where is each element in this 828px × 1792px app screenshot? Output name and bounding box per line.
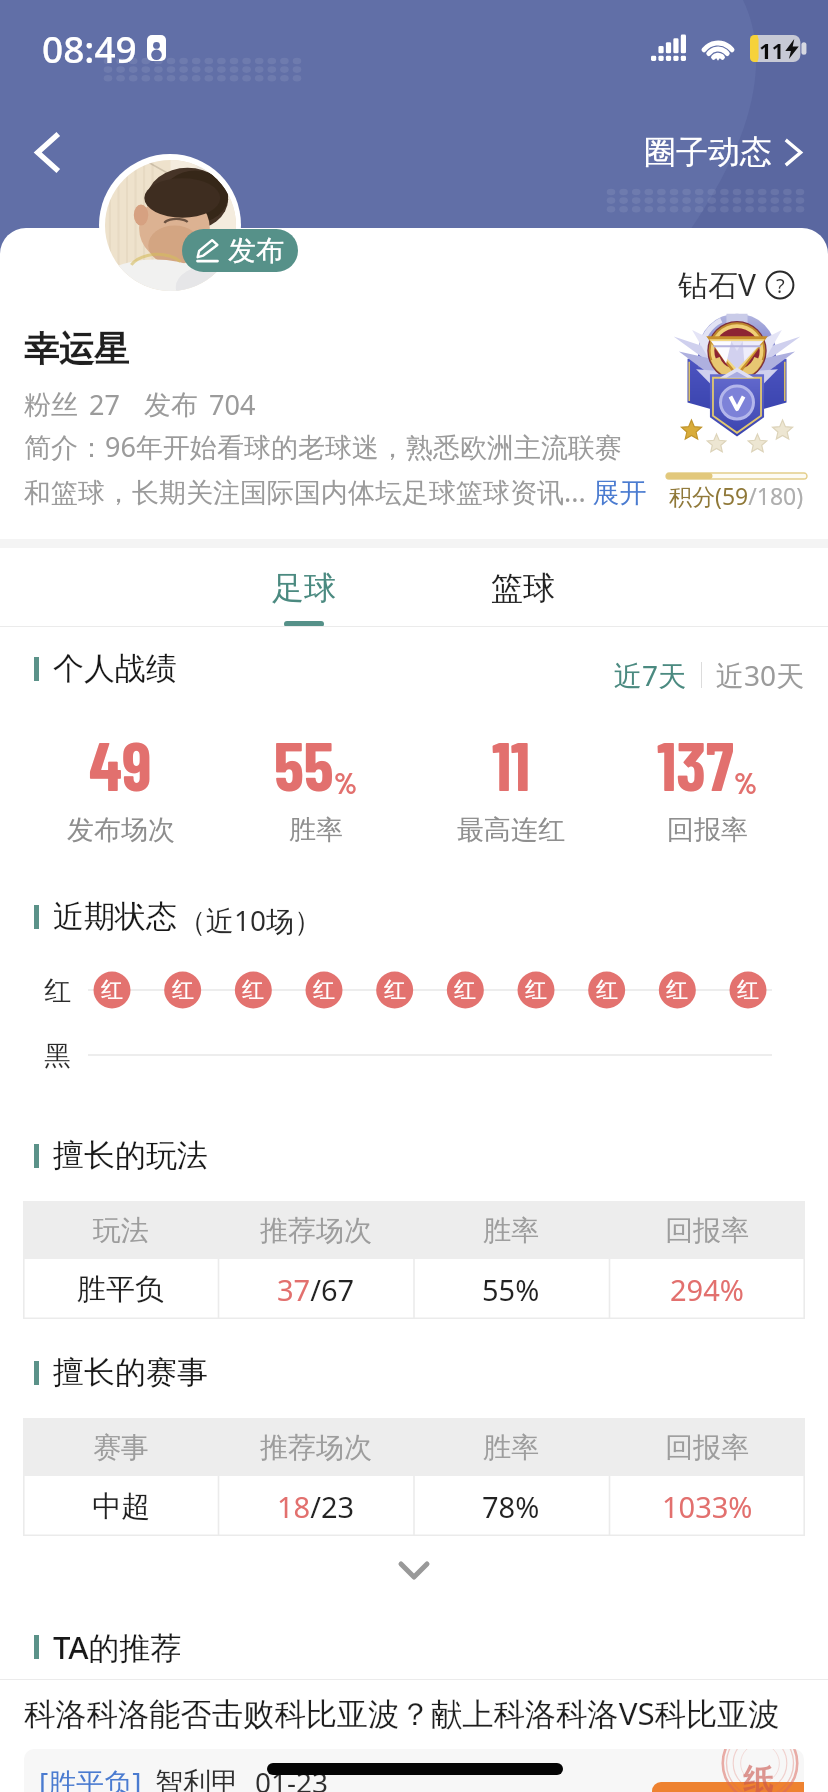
staticText: 胜平负 [77, 1271, 164, 1308]
staticText: 红 [44, 974, 71, 1008]
staticText: 78% [482, 1487, 540, 1526]
staticText: 红 [596, 976, 618, 1004]
staticText: 红 [454, 976, 476, 1004]
staticText: 圈子动态 [644, 132, 772, 172]
button[interactable]: Profile photo [99, 154, 241, 296]
button[interactable]: [胜平负] [24, 1749, 804, 1792]
staticText: 294% [670, 1270, 744, 1309]
staticText: 11 [492, 723, 531, 805]
button[interactable]: 胜平负 [23, 1259, 218, 1319]
button[interactable]: Win [377, 972, 413, 1008]
staticText: 发布场次 [67, 813, 175, 847]
button[interactable]: Win [518, 972, 554, 1008]
staticText: % [334, 764, 357, 800]
staticText: 回报率 [665, 1430, 749, 1465]
staticText: 擅长的赛事 [53, 1353, 208, 1392]
button[interactable]: Win [235, 972, 271, 1008]
staticText: 红 [384, 976, 406, 1004]
staticText: 回报率 [665, 1213, 749, 1248]
staticText: 发布 [144, 388, 198, 422]
button[interactable]: 78% [413, 1476, 609, 1536]
staticText: 红 [313, 976, 335, 1004]
staticText: 回报率 [667, 813, 748, 847]
staticText: 简介：96年开始看球的老球迷，熟悉欧洲主流联赛和篮球，长期关注国际国内体坛足球篮… [24, 428, 648, 510]
staticText: 玩法 [93, 1213, 149, 1248]
staticText: [胜平负] [39, 1763, 142, 1792]
staticText: 49 [89, 723, 152, 805]
staticText: 钻石V [678, 264, 756, 305]
staticText: 红 [525, 976, 547, 1004]
staticText: 胜率 [289, 813, 343, 847]
button[interactable]: Win [306, 972, 342, 1008]
staticText: 37/67 [277, 1270, 355, 1309]
staticText: 近7天 [614, 656, 687, 694]
button[interactable]: 近30天 [710, 652, 811, 698]
staticText: 推荐场次 [260, 1430, 372, 1465]
staticText: ? [776, 272, 785, 299]
staticText: 幸运星 [24, 327, 129, 371]
button[interactable]: 发布 [182, 229, 298, 272]
staticText: 27 [89, 386, 120, 423]
button[interactable]: 1033% [609, 1476, 805, 1536]
button[interactable]: Expand more [0, 1542, 828, 1598]
staticText: 黑 [44, 1039, 71, 1073]
staticText: 红 [101, 976, 123, 1004]
staticText: 红 [737, 976, 759, 1004]
staticText: 近期状态 [53, 897, 177, 936]
staticText: 11 [759, 35, 785, 62]
staticText: 中超 [92, 1488, 150, 1525]
staticText: 704 [209, 386, 256, 423]
staticText: % [734, 764, 757, 800]
staticText: 08:49 [42, 23, 137, 73]
staticText: 粉丝 [24, 388, 78, 422]
button[interactable]: Back [14, 119, 80, 185]
staticText: 01-23 [255, 1763, 329, 1792]
button[interactable]: Win [94, 972, 130, 1008]
staticText: 1033% [662, 1487, 753, 1526]
button[interactable]: 足球 [194, 548, 414, 626]
staticText: 红 [666, 976, 688, 1004]
staticText: 红 [242, 976, 264, 1004]
button[interactable]: 55% [413, 1259, 609, 1319]
staticText: 发布 [228, 233, 284, 268]
staticText: 足球 [272, 568, 336, 608]
staticText: 赛事 [93, 1430, 149, 1465]
staticText: 胜率 [483, 1213, 539, 1248]
staticText: 擅长的玩法 [53, 1136, 208, 1175]
staticText: 137 [657, 723, 734, 805]
button[interactable]: 18/23 [218, 1476, 413, 1536]
staticText: 科洛科洛能否击败科比亚波？献上科洛科洛VS科比亚波 [24, 1692, 780, 1735]
button[interactable]: 圈子动态 [638, 124, 808, 180]
button[interactable]: Win [447, 972, 483, 1008]
staticText: TA的推荐 [53, 1626, 182, 1668]
button[interactable]: Win [659, 972, 695, 1008]
button[interactable]: Win [165, 972, 201, 1008]
staticText: 积分(59/180) [669, 480, 804, 511]
button[interactable]: Win [589, 972, 625, 1008]
staticText: （近10场） [178, 901, 323, 939]
staticText: 近30天 [716, 656, 805, 694]
staticText: 18/23 [277, 1487, 355, 1526]
staticText: 最高连红 [457, 813, 565, 847]
button[interactable]: 近7天 [608, 652, 693, 698]
button[interactable]: 294% [609, 1259, 805, 1319]
staticText: 智利甲 [155, 1765, 239, 1792]
staticText: 推荐场次 [260, 1213, 372, 1248]
staticText: 纸 [743, 1761, 773, 1792]
button[interactable]: 37/67 [218, 1259, 413, 1319]
staticText: 红 [172, 976, 194, 1004]
staticText: 胜率 [483, 1430, 539, 1465]
button[interactable]: 篮球 [413, 548, 633, 626]
staticText: 55% [482, 1270, 540, 1309]
staticText: 篮球 [491, 568, 555, 608]
button[interactable]: 中超 [23, 1476, 218, 1536]
staticText: 55 [274, 723, 334, 805]
staticText: 个人战绩 [53, 649, 177, 688]
button[interactable]: Win [730, 972, 766, 1008]
